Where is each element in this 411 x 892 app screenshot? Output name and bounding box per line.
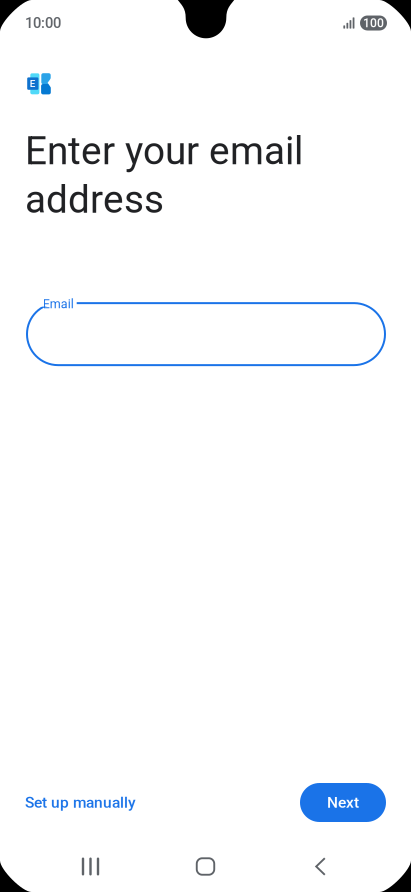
staticText: E (30, 78, 36, 89)
button[interactable]: Set up manually (25, 783, 136, 822)
staticText: Set up manually (25, 793, 136, 811)
staticText: 10:00 (25, 14, 61, 32)
staticText: 100 (363, 16, 384, 30)
staticText: Enter your email address (25, 128, 303, 222)
button[interactable]: Recent apps (33, 841, 148, 892)
staticText: Email (43, 297, 74, 311)
button[interactable]: Back (263, 841, 378, 892)
button[interactable]: Next (300, 783, 386, 822)
button[interactable]: Home (148, 841, 263, 892)
staticText: Next (327, 793, 359, 811)
